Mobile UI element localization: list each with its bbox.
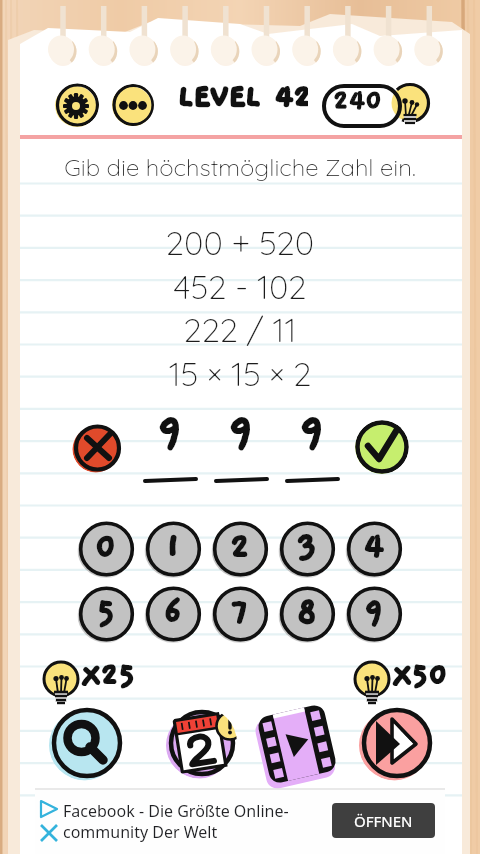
staticText: 0	[77, 528, 135, 566]
button[interactable]: Confirm	[355, 420, 409, 474]
staticText: 5	[77, 593, 135, 631]
staticText: 8	[278, 593, 336, 631]
button[interactable]: Skip level	[358, 705, 434, 781]
button[interactable]: 7	[211, 585, 269, 643]
button[interactable]: Settings	[55, 83, 99, 127]
button[interactable]: 0	[77, 520, 135, 578]
staticText: Facebook - Die Größte Online- community …	[63, 800, 289, 843]
staticText: 3	[278, 528, 336, 566]
button[interactable]: 4	[345, 520, 403, 578]
staticText: 222 / 11	[0, 309, 480, 350]
staticText: 4	[345, 528, 403, 566]
staticText: 8	[278, 593, 336, 631]
staticText: 7	[211, 593, 269, 631]
button[interactable]: 8	[278, 585, 336, 643]
staticText: 9	[146, 406, 194, 456]
staticText: 1	[144, 528, 202, 566]
button[interactable]: Clear	[72, 423, 122, 473]
staticText: 9	[217, 406, 265, 456]
staticText: LEVEL 42	[178, 80, 308, 114]
staticText: 9	[345, 593, 403, 631]
staticText: 6	[144, 593, 202, 631]
staticText: LEVEL 42	[178, 80, 308, 114]
staticText: 4	[345, 528, 403, 566]
staticText: 3	[278, 528, 336, 566]
staticText: X25	[82, 658, 146, 692]
staticText: 5	[77, 593, 135, 631]
staticText: 452 - 102	[0, 266, 480, 307]
staticText: X50	[393, 658, 457, 692]
button[interactable]: 5	[77, 585, 135, 643]
button[interactable]: Hints: 240	[320, 78, 436, 132]
staticText: 9	[288, 406, 336, 456]
staticText: Gib die höchstmögliche Zahl ein.	[0, 152, 480, 182]
staticText: 9	[288, 406, 336, 456]
staticText: 240	[333, 86, 393, 116]
staticText: 9	[146, 406, 194, 456]
staticText: 2	[211, 528, 269, 566]
button[interactable]: Menu	[112, 84, 154, 126]
button[interactable]: 3	[278, 520, 336, 578]
staticText: 200 + 520	[0, 222, 480, 263]
staticText: 9	[345, 593, 403, 631]
button[interactable]: 1	[144, 520, 202, 578]
staticText: 2	[211, 528, 269, 566]
button[interactable]: 2	[211, 520, 269, 578]
staticText: 6	[144, 593, 202, 631]
staticText: X50	[393, 658, 457, 692]
staticText: 0	[77, 528, 135, 566]
button[interactable]: 6	[144, 585, 202, 643]
staticText: X25	[82, 658, 146, 692]
staticText: 15 × 15 × 2	[0, 353, 480, 394]
staticText: 240	[333, 86, 393, 116]
button[interactable]: Hint	[48, 705, 124, 781]
staticText: 9	[217, 406, 265, 456]
button[interactable]: Watch video	[261, 708, 333, 780]
button[interactable]: 9	[345, 585, 403, 643]
staticText: 7	[211, 593, 269, 631]
staticText: 1	[144, 528, 202, 566]
button[interactable]: ÖFFNEN	[332, 803, 435, 838]
button[interactable]: Daily reward	[165, 707, 237, 779]
staticText: ÖFFNEN	[354, 811, 413, 831]
